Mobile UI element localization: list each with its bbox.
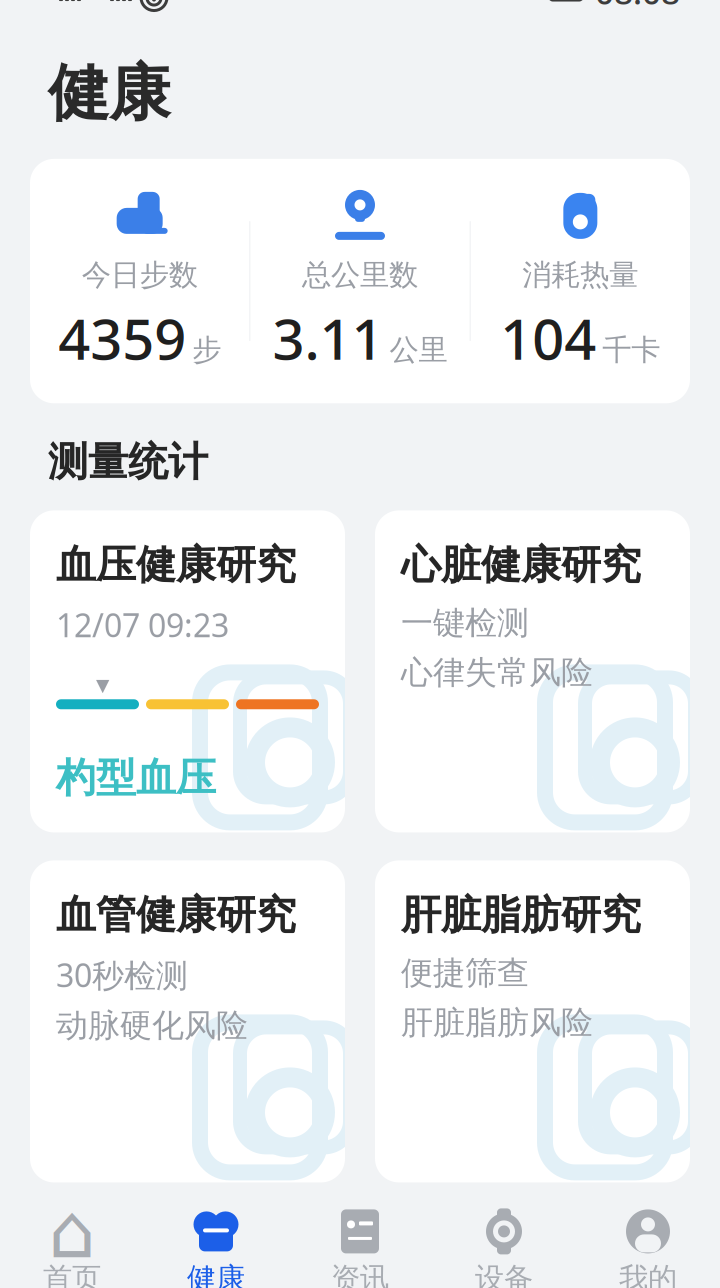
- staticText: 首页: [43, 1260, 101, 1288]
- button[interactable]: ⌂: [0, 1200, 144, 1288]
- staticText: 今日步数: [82, 257, 198, 293]
- staticText: 4359: [58, 301, 186, 375]
- staticText: 104: [500, 301, 596, 375]
- staticText: 测量统计: [48, 437, 208, 486]
- button[interactable]: 资讯: [288, 1200, 432, 1288]
- staticText: 我的: [619, 1260, 677, 1288]
- button[interactable]: 健康: [144, 1200, 288, 1288]
- staticText: 一键检测: [401, 603, 529, 643]
- staticText: 12/07 09:23: [56, 603, 229, 646]
- staticText: 肝脏脂肪风险: [401, 1003, 593, 1042]
- staticText: ⌂: [48, 1189, 95, 1274]
- staticText: 便捷筛查: [401, 953, 529, 993]
- staticText: 资讯: [331, 1260, 389, 1288]
- staticText: 30秒检测: [56, 953, 188, 996]
- button[interactable]: 血压健康研究: [30, 510, 345, 832]
- button[interactable]: 肝脏脂肪研究: [375, 860, 690, 1182]
- staticText: 消耗热量: [522, 257, 638, 293]
- button[interactable]: 血管健康研究: [30, 860, 345, 1182]
- staticText: 杓型血压: [56, 753, 216, 802]
- staticText: 健康: [48, 56, 170, 131]
- button[interactable]: 心脏健康研究: [375, 510, 690, 832]
- staticText: 血压健康研究: [56, 540, 296, 589]
- staticText: 设备: [475, 1260, 533, 1288]
- staticText: 健康: [187, 1260, 245, 1288]
- button[interactable]: 设备: [432, 1200, 576, 1288]
- staticText: 心脏健康研究: [401, 540, 641, 589]
- staticText: 动脉硬化风险: [56, 1006, 248, 1045]
- staticText: 血管健康研究: [56, 890, 296, 939]
- staticText: 心律失常风险: [401, 653, 593, 692]
- staticText: 千卡: [602, 332, 660, 368]
- button[interactable]: 我的: [576, 1200, 720, 1288]
- staticText: 肝脏脂肪研究: [401, 890, 641, 939]
- staticText: 3.11: [272, 301, 383, 375]
- staticText: 总公里数: [302, 257, 418, 293]
- staticText: 公里: [389, 332, 447, 368]
- staticText: 步: [192, 332, 221, 368]
- staticText: 08:08: [595, 0, 680, 14]
- staticText: ▾: [96, 669, 109, 699]
